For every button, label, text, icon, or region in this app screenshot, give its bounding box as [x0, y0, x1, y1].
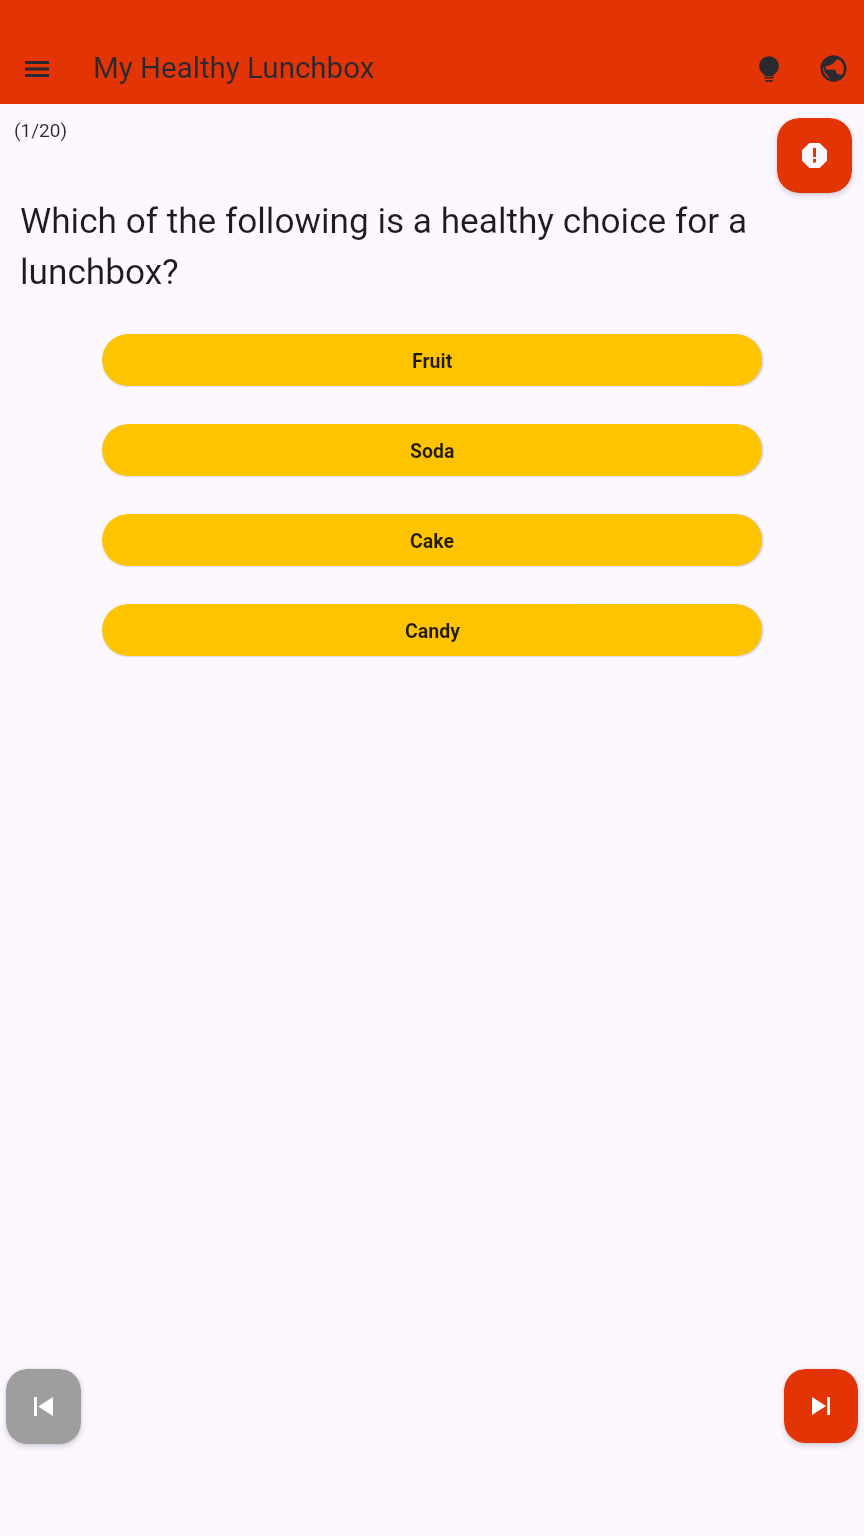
staticText: Soda	[410, 440, 455, 463]
button[interactable]: Cake	[102, 514, 762, 566]
button[interactable]: Fruit	[102, 334, 762, 386]
button[interactable]: Report	[777, 118, 852, 193]
button[interactable]: Language	[809, 44, 857, 92]
button[interactable]: Soda	[102, 424, 762, 476]
staticText: Candy	[405, 620, 460, 643]
staticText: (1/20)	[14, 119, 67, 141]
staticText: Which of the following is a healthy choi…	[20, 200, 844, 293]
staticText: My Healthy Lunchbox	[93, 51, 375, 86]
button[interactable]: Menu	[13, 44, 61, 92]
button[interactable]: Hint	[745, 46, 793, 94]
button[interactable]: Candy	[102, 604, 762, 656]
button[interactable]: Next question	[784, 1369, 858, 1443]
staticText: Cake	[410, 530, 454, 553]
button[interactable]: Previous question	[6, 1369, 81, 1444]
staticText: Fruit	[412, 350, 453, 373]
